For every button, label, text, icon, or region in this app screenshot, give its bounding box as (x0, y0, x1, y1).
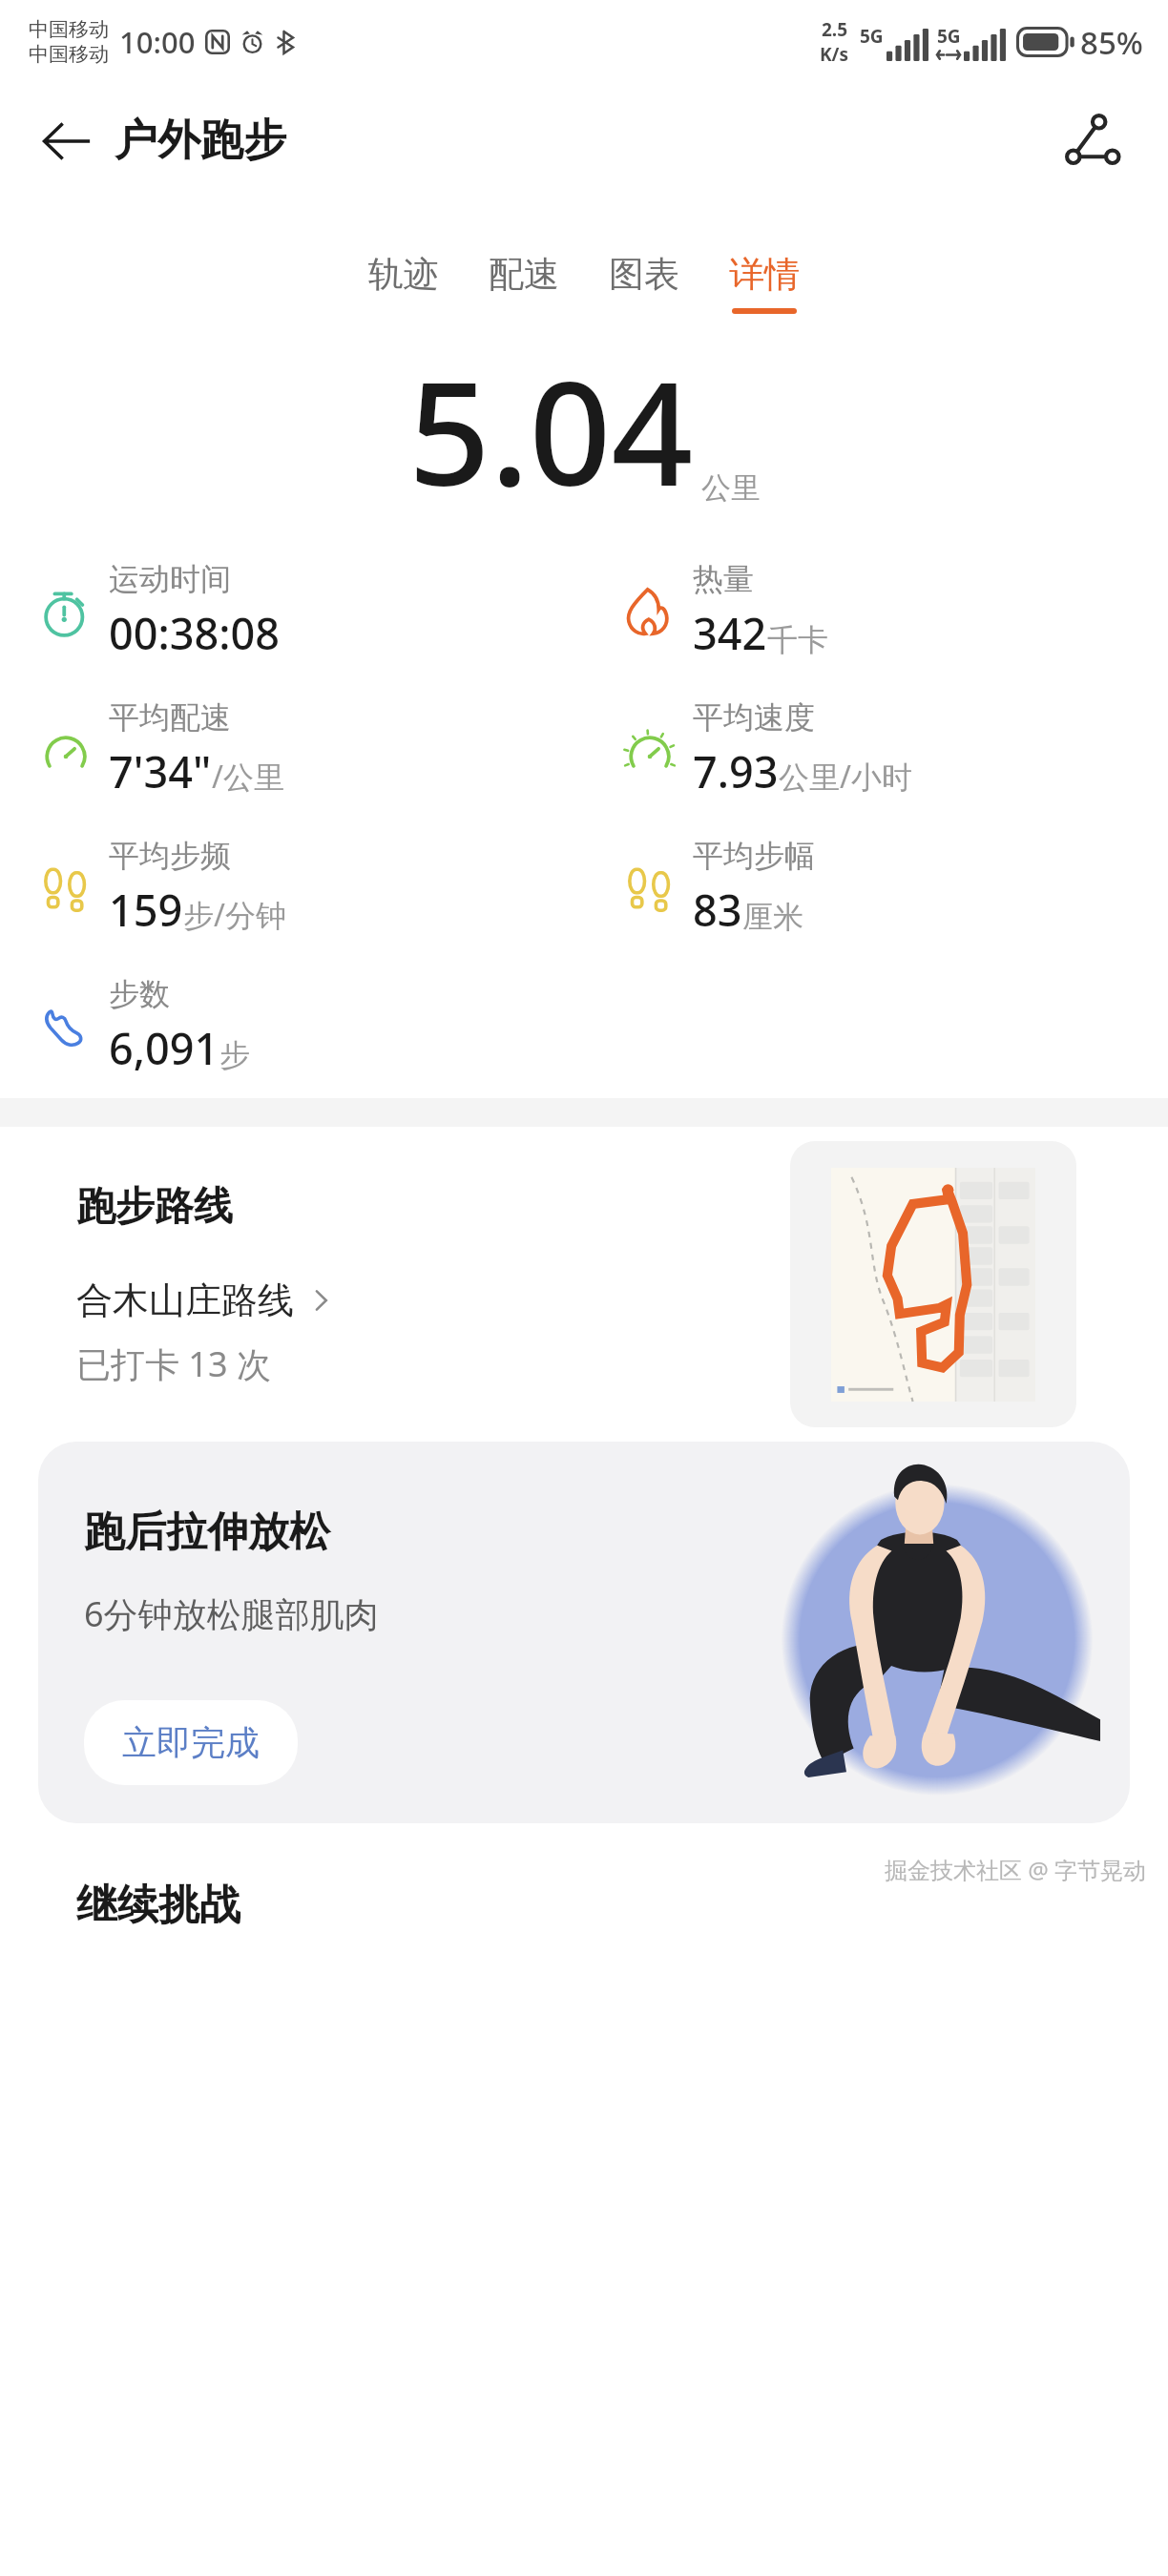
button[interactable]: 配速 (464, 246, 584, 320)
button[interactable]: 图表 (584, 246, 704, 320)
staticText: 平均步幅 (693, 837, 815, 875)
staticText: 7'34" (109, 742, 212, 800)
button[interactable]: 平均步幅 (584, 837, 1168, 939)
staticText: 跑步路线 (76, 1182, 233, 1232)
button[interactable]: 平均速度 (584, 698, 1168, 800)
staticText: 步 (219, 1036, 250, 1074)
staticText: 跑后拉伸放松 (84, 1506, 330, 1558)
staticText: 中国移动 (29, 42, 109, 67)
button[interactable]: 步数 (0, 975, 584, 1077)
staticText: 中国移动 (29, 17, 109, 42)
staticText: 平均配速 (109, 698, 231, 737)
button[interactable]: 跑后拉伸放松 (38, 1442, 1130, 1823)
staticText: 00:38:08 (109, 604, 280, 662)
staticText: 7.93 (693, 742, 779, 800)
staticText: 公里/小时 (779, 756, 912, 798)
staticText: 图表 (609, 252, 679, 297)
button[interactable]: 立即完成 (84, 1700, 298, 1785)
staticText: 5.04 (408, 333, 694, 528)
staticText: 合木山庄路线 (76, 1278, 294, 1323)
button[interactable]: 平均配速 (0, 698, 584, 800)
staticText: 85% (1080, 21, 1143, 64)
staticText: 千卡 (767, 621, 828, 659)
button[interactable]: Share (1048, 96, 1136, 184)
button[interactable]: 运动时间 (0, 560, 584, 662)
staticText: 2.5 (822, 17, 848, 42)
staticText: K/s (820, 42, 849, 67)
button[interactable]: 详情 (704, 246, 824, 320)
staticText: 配速 (489, 252, 559, 297)
staticText: 掘金技术社区 @ 字节晃动 (885, 1854, 1147, 1885)
staticText: 轨迹 (368, 252, 439, 297)
button[interactable]: 继续挑战 (76, 1880, 240, 1931)
staticText: 步数 (109, 975, 170, 1013)
staticText: 10:00 (119, 22, 196, 62)
staticText: 6分钟放松腿部肌肉 (84, 1590, 379, 1637)
staticText: 6,091 (109, 1019, 219, 1077)
staticText: 平均速度 (693, 698, 815, 737)
staticText: 平均步频 (109, 837, 231, 875)
staticText: 立即完成 (122, 1721, 260, 1764)
staticText: 户外跑步 (115, 114, 286, 168)
staticText: 厘米 (742, 898, 803, 936)
staticText: 83 (693, 881, 742, 939)
other: Back (40, 114, 94, 168)
staticText: 运动时间 (109, 560, 231, 598)
staticText: 342 (693, 604, 767, 662)
button[interactable]: 平均步频 (0, 837, 584, 939)
staticText: 继续挑战 (76, 1880, 240, 1931)
staticText: /公里 (212, 756, 284, 798)
staticText: 5G (860, 24, 884, 49)
staticText: 热量 (693, 560, 754, 598)
staticText: 5G (937, 24, 961, 49)
staticText: 步/分钟 (183, 894, 286, 936)
button[interactable]: 热量 (584, 560, 1168, 662)
staticText: 已打卡 13 次 (76, 1340, 271, 1387)
button[interactable]: Back (0, 100, 305, 181)
button[interactable]: 轨迹 (344, 246, 464, 320)
button[interactable]: 跑步路线 (0, 1127, 1168, 1442)
staticText: 详情 (729, 252, 800, 297)
staticText: 公里 (701, 469, 761, 507)
staticText: 159 (109, 881, 183, 939)
